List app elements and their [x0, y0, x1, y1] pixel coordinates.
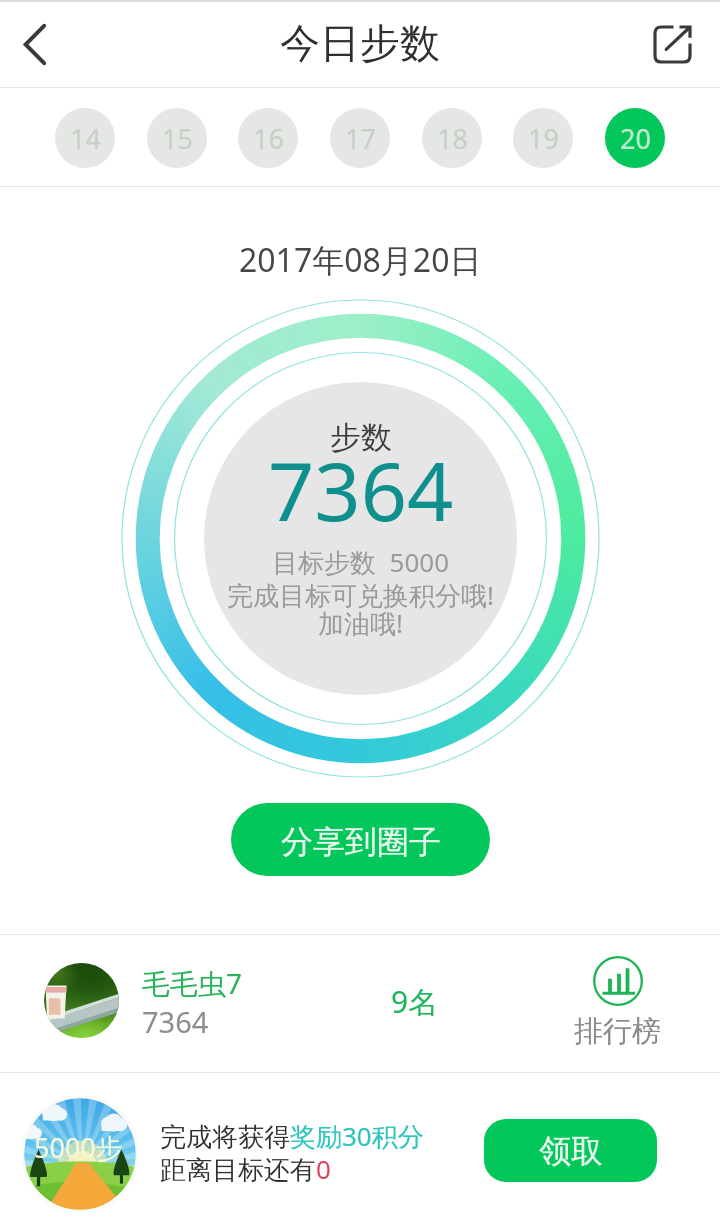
- staticText: 18: [437, 120, 468, 157]
- staticText: 17: [345, 120, 376, 157]
- staticText: 2017年08月20日: [239, 238, 482, 282]
- staticText: 领取: [539, 1131, 603, 1171]
- staticText: 15: [162, 120, 193, 157]
- staticText: 20: [620, 120, 651, 157]
- staticText: 今日步数: [280, 18, 440, 68]
- button[interactable]: Share: [640, 12, 704, 76]
- staticText: 毛毛虫7: [142, 964, 243, 1002]
- staticText: 16: [253, 120, 284, 157]
- button[interactable]: 17: [330, 108, 390, 168]
- staticText: 7364: [142, 1002, 209, 1041]
- staticText: 5000步: [34, 1129, 123, 1166]
- staticText: 加油哦!: [318, 605, 403, 641]
- staticText: 分享到圈子: [281, 822, 441, 862]
- staticText: 19: [528, 120, 559, 157]
- staticText: 排行榜: [574, 1013, 661, 1050]
- button[interactable]: 排行榜: [574, 956, 661, 1050]
- button[interactable]: 19: [513, 108, 573, 168]
- staticText: 步数: [330, 418, 392, 457]
- button[interactable]: 15: [147, 108, 207, 168]
- button[interactable]: 16: [238, 108, 298, 168]
- button[interactable]: 领取: [484, 1119, 657, 1182]
- button[interactable]: 毛毛虫7: [0, 933, 720, 1072]
- button[interactable]: 14: [55, 108, 115, 168]
- staticText: 9名: [391, 981, 439, 1022]
- staticText: 距离目标还有0: [160, 1151, 331, 1187]
- staticText: 完成将获得奖励30积分: [160, 1118, 424, 1154]
- staticText: 目标步数 5000: [272, 544, 450, 580]
- staticText: 完成目标可兑换积分哦!: [227, 577, 494, 613]
- staticText: 7364: [268, 434, 454, 544]
- button[interactable]: Back: [2, 11, 68, 77]
- button[interactable]: 分享到圈子: [231, 803, 490, 876]
- staticText: 14: [70, 120, 101, 157]
- button[interactable]: 18: [422, 108, 482, 168]
- button[interactable]: 20: [605, 108, 665, 168]
